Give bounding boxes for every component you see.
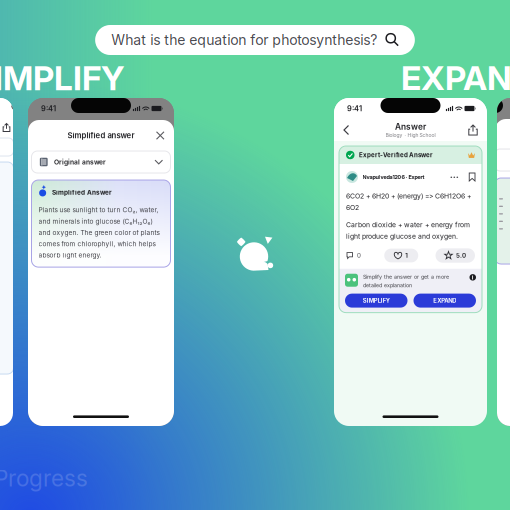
staticText: 0 [357,252,361,259]
button[interactable]: Bookmark [466,173,475,181]
staticText: Simplify the answer or get a more detail… [363,274,449,289]
staticText: EXPAND [401,58,510,98]
staticText: i [472,274,474,281]
staticText: 6CO2 + 6H20 + (energy) => C6H12O6 + 6O2 [346,192,471,212]
button[interactable]: What is the equation for photosynthesis? [95,25,415,55]
button[interactable]: Back [339,120,353,139]
button[interactable]: 1 [384,249,418,262]
button[interactable]: 5.0 [435,248,475,263]
staticText: ··· [450,171,459,183]
staticText: Biology · High School [385,132,435,138]
staticText: 1 [405,252,408,259]
staticText: Carbon dioxide + water + energy from lig… [346,221,470,240]
staticText: 9:41 [347,104,362,113]
button[interactable]: More options [447,171,462,183]
staticText: Answer [395,122,426,132]
button[interactable]: Original answer [31,151,170,173]
staticText: 5.0 [456,252,466,259]
staticText: Nvapulveda1206 · Expert [362,174,424,180]
button[interactable]: Share [464,121,482,139]
button[interactable]: 0 [346,249,367,262]
staticText: Expert-Verified Answer [359,151,432,159]
staticText: Plants use sunlight to turn CO₂, water, … [38,206,159,259]
staticText: Original answer [54,158,106,166]
staticText: 9:41 [41,104,56,113]
staticText: Progress [0,465,88,492]
button[interactable]: Close [152,128,168,143]
staticText: Simplified answer [67,131,134,140]
button[interactable]: EXPAND [413,294,476,308]
staticText: EXPAND [433,297,456,304]
staticText: SIMPLIFY [363,297,390,304]
staticText: Simplified Answer [52,189,112,196]
staticText: What is the equation for photosynthesis? [111,31,377,48]
button[interactable]: SIMPLIFY [345,294,407,308]
staticText: SIMPLIFY [0,58,125,98]
